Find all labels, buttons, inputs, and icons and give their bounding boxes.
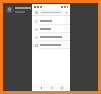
button[interactable]: More options bbox=[32, 41, 70, 48]
button[interactable]: More options bbox=[65, 19, 68, 22]
button[interactable]: More options bbox=[65, 35, 68, 38]
other: App icon bbox=[6, 6, 13, 13]
button[interactable]: Recent apps bbox=[59, 85, 64, 90]
button[interactable]: More options bbox=[65, 43, 68, 46]
button[interactable]: Account bbox=[65, 11, 68, 14]
button[interactable]: Menu bbox=[34, 10, 38, 14]
button[interactable]: More options bbox=[65, 27, 68, 30]
button[interactable]: Home bbox=[49, 85, 54, 90]
button[interactable] bbox=[39, 10, 64, 14]
button[interactable]: More options bbox=[32, 25, 70, 32]
button[interactable]: More options bbox=[32, 33, 70, 40]
button[interactable]: App icon bbox=[4, 4, 33, 15]
button[interactable]: Back bbox=[38, 85, 43, 90]
button[interactable]: More options bbox=[32, 17, 70, 24]
